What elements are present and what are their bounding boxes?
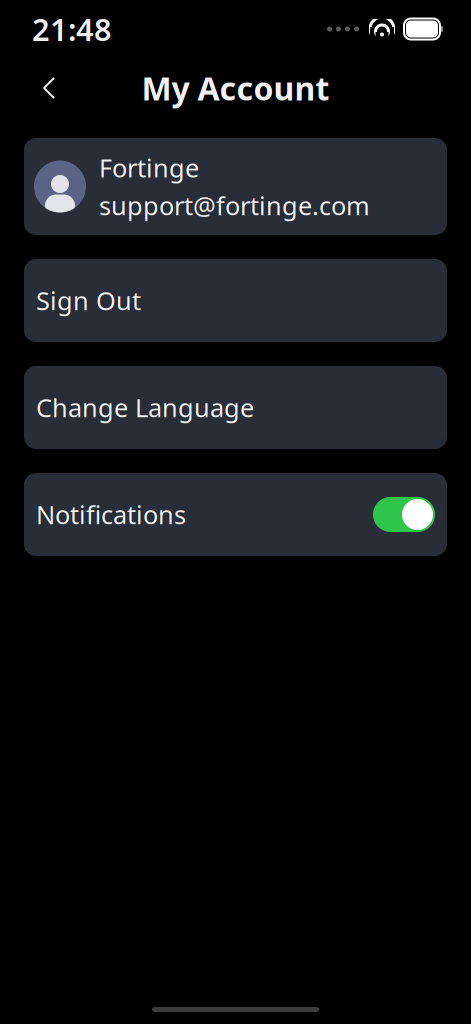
staticText: My Account xyxy=(141,67,329,109)
staticText: Fortinge xyxy=(99,151,199,184)
button[interactable]: Back xyxy=(26,65,72,111)
staticText: 21:48 xyxy=(32,9,112,49)
staticText: Change Language xyxy=(36,391,254,424)
staticText: Notifications xyxy=(36,498,186,531)
staticText: support@fortinge.com xyxy=(99,188,370,222)
button[interactable]: Sign Out xyxy=(24,259,447,342)
staticText: Sign Out xyxy=(36,284,141,317)
button[interactable]: Notifications toggle xyxy=(373,497,435,532)
button[interactable]: Fortinge xyxy=(24,138,447,235)
button[interactable]: Change Language xyxy=(24,366,447,449)
